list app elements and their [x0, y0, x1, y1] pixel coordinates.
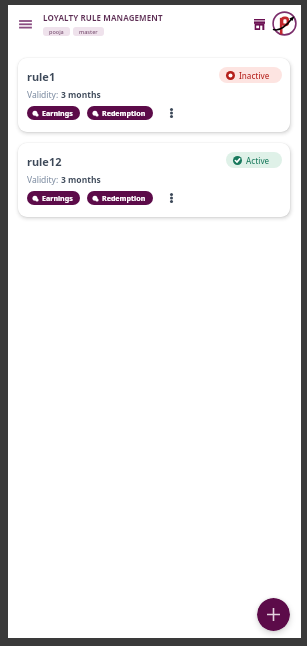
staticText: 3 months: [61, 89, 101, 101]
staticText: Earnings: [42, 108, 73, 118]
button[interactable]: pooja: [43, 27, 70, 36]
staticText: Redemption: [102, 108, 146, 118]
button[interactable]: Store: [249, 14, 269, 34]
button[interactable]: Menu: [14, 13, 36, 35]
staticText: LOYALTY RULE MANAGEMENT: [43, 12, 163, 23]
staticText: rule1: [27, 69, 56, 84]
staticText: 3 months: [61, 174, 101, 186]
staticText: rule12: [27, 154, 62, 169]
button[interactable]: Redemption: [87, 191, 153, 205]
button[interactable]: rule12: [18, 143, 290, 217]
button[interactable]: More options: [164, 106, 178, 120]
staticText: Validity:: [27, 89, 61, 101]
button[interactable]: Earnings: [27, 191, 80, 205]
button[interactable]: Earnings: [27, 106, 80, 120]
button[interactable]: Add rule: [257, 598, 290, 631]
button[interactable]: Redemption: [87, 106, 153, 120]
staticText: pooja: [49, 28, 64, 35]
staticText: Inactive: [239, 70, 270, 81]
staticText: Validity:: [27, 174, 61, 186]
staticText: Redemption: [102, 193, 146, 203]
button[interactable]: Profile: [271, 10, 298, 37]
staticText: Earnings: [42, 193, 73, 203]
button[interactable]: Active: [226, 152, 282, 168]
staticText: master: [79, 28, 98, 35]
staticText: Active: [246, 155, 270, 166]
button[interactable]: master: [73, 27, 104, 36]
button[interactable]: rule1: [18, 58, 290, 132]
button[interactable]: More options: [164, 191, 178, 205]
button[interactable]: Inactive: [219, 67, 282, 83]
